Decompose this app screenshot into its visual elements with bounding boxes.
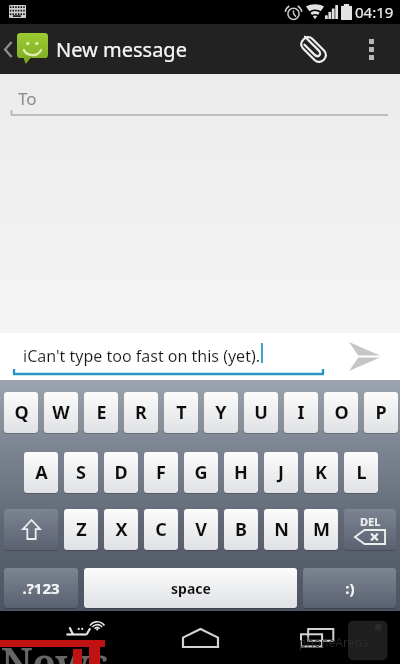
button[interactable]: A (24, 452, 58, 493)
button[interactable]: M (304, 509, 338, 550)
button[interactable]: Delete (344, 509, 396, 550)
button[interactable]: T (164, 392, 198, 433)
button[interactable]: Z (64, 509, 98, 550)
button[interactable]: Send (330, 333, 400, 380)
staticText: A (35, 460, 48, 485)
other: Navigate up (4, 41, 13, 58)
button[interactable]: V (184, 509, 218, 550)
staticText: :) (345, 578, 355, 598)
staticText: J (278, 460, 284, 485)
button[interactable]: G (184, 452, 218, 493)
button[interactable]: W (44, 392, 78, 433)
staticText: U (254, 400, 268, 425)
staticText: E (96, 400, 107, 425)
staticText: Y (215, 400, 227, 425)
button[interactable]: X (104, 509, 138, 550)
staticText: V (195, 517, 207, 542)
staticText: M (313, 517, 330, 542)
staticText: H (234, 460, 248, 485)
button[interactable]: .?123 (4, 568, 78, 608)
button[interactable]: E (84, 392, 118, 433)
button[interactable]: P (364, 392, 398, 433)
button[interactable]: O (324, 392, 358, 433)
button[interactable]: Home (155, 611, 245, 664)
staticText: News (1, 634, 109, 664)
button[interactable]: N (264, 509, 298, 550)
button[interactable]: More options (342, 24, 400, 74)
button[interactable]: R (124, 392, 158, 433)
button[interactable]: :) (303, 568, 396, 608)
button[interactable]: Back (55, 611, 145, 664)
staticText: X (115, 517, 128, 542)
staticText: Z (76, 517, 87, 542)
button[interactable]: I (284, 392, 318, 433)
staticText: phoneArena (299, 634, 369, 650)
staticText: G (194, 460, 208, 485)
staticText: .?123 (22, 578, 60, 598)
staticText: Q (14, 400, 29, 425)
staticText: 04:19 (355, 2, 394, 22)
button[interactable]: K (304, 452, 338, 493)
button[interactable]: U (244, 392, 278, 433)
button[interactable]: J (264, 452, 298, 493)
staticText: B (235, 517, 247, 542)
button[interactable]: H (224, 452, 258, 493)
button[interactable]: Q (4, 392, 38, 433)
staticText: K (315, 460, 327, 485)
staticText: space (171, 579, 211, 598)
staticText: DEL (360, 514, 381, 529)
staticText: C (155, 517, 167, 542)
button[interactable]: C (144, 509, 178, 550)
staticText: To (18, 87, 37, 110)
button[interactable]: S (64, 452, 98, 493)
button[interactable]: Recent apps (272, 611, 362, 664)
button[interactable]: Attach (285, 24, 342, 74)
button[interactable]: Shift (4, 509, 58, 550)
button[interactable]: Y (204, 392, 238, 433)
button[interactable]: D (104, 452, 138, 493)
staticText: I (297, 400, 305, 425)
staticText: New message (56, 36, 187, 63)
staticText: S (76, 460, 86, 485)
button[interactable]: F (144, 452, 178, 493)
button[interactable]: L (344, 452, 378, 493)
button[interactable]: Navigate up (0, 24, 50, 74)
staticText: W (52, 400, 70, 425)
button[interactable]: B (224, 509, 258, 550)
staticText: N (274, 517, 289, 542)
staticText: T (176, 400, 187, 425)
staticText: L (356, 460, 367, 485)
staticText: iCan't type too fast on this (yet). (23, 345, 261, 367)
staticText: P (375, 400, 387, 425)
staticText: O (334, 400, 349, 425)
staticText: R (135, 400, 147, 425)
staticText: D (114, 460, 128, 485)
staticText: F (156, 460, 166, 485)
button[interactable]: space (84, 568, 297, 608)
